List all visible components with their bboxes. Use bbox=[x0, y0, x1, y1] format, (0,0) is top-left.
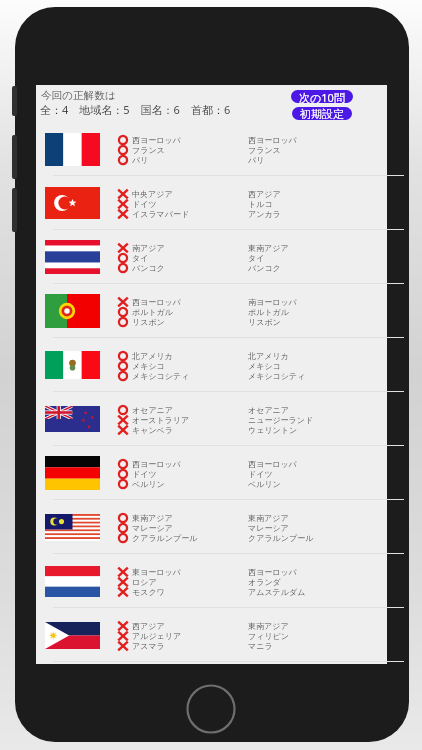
staticText: タイ bbox=[248, 253, 265, 263]
staticText: パリ bbox=[248, 155, 265, 165]
staticText: 東ヨーロッパ bbox=[132, 567, 181, 577]
staticText: ウェリントン bbox=[248, 425, 298, 435]
button[interactable]: 西ヨーロッパ bbox=[36, 446, 387, 500]
staticText: ベルリン bbox=[248, 479, 281, 489]
staticText: 北アメリカ bbox=[132, 351, 173, 361]
staticText: キャンベラ bbox=[132, 425, 173, 435]
button[interactable]: 北アメリカ bbox=[36, 338, 387, 392]
staticText: 西ヨーロッパ bbox=[248, 135, 297, 145]
staticText: フランス bbox=[132, 145, 165, 155]
button[interactable]: 東南アジア bbox=[36, 500, 387, 554]
staticText: 次の10問 bbox=[299, 90, 345, 103]
staticText: 西アジア bbox=[132, 621, 165, 631]
staticText: フランス bbox=[248, 145, 281, 155]
button[interactable]: 次の10問 bbox=[291, 90, 353, 103]
staticText: バンコク bbox=[132, 263, 165, 273]
staticText: オセアニア bbox=[132, 405, 173, 415]
staticText: イスラマバード bbox=[132, 209, 190, 219]
staticText: オセアニア bbox=[248, 405, 289, 415]
staticText: ロシア bbox=[132, 577, 157, 587]
staticText: 西アジア bbox=[248, 189, 281, 199]
staticText: 西ヨーロッパ bbox=[132, 135, 181, 145]
button[interactable]: 南アジア bbox=[36, 230, 387, 284]
staticText: 今回の正解数は bbox=[41, 89, 116, 102]
staticText: オランダ bbox=[248, 577, 281, 587]
staticText: 北アメリカ bbox=[248, 351, 289, 361]
staticText: ベルリン bbox=[132, 479, 165, 489]
staticText: メキシコシティ bbox=[248, 371, 306, 381]
button[interactable]: 初期設定 bbox=[292, 107, 352, 120]
staticText: バンコク bbox=[248, 263, 281, 273]
button[interactable]: 西アジア bbox=[36, 608, 387, 662]
staticText: タイ bbox=[132, 253, 149, 263]
staticText: パリ bbox=[132, 155, 149, 165]
staticText: 東南アジア bbox=[248, 621, 289, 631]
staticText: トルコ bbox=[248, 199, 273, 209]
staticText: 東南アジア bbox=[248, 243, 289, 253]
staticText: ドイツ bbox=[132, 199, 157, 209]
staticText: ポルトガル bbox=[248, 307, 289, 317]
staticText: マニラ bbox=[248, 641, 273, 651]
staticText: 南アジア bbox=[132, 243, 165, 253]
staticText: フィリピン bbox=[248, 631, 289, 641]
staticText: 西ヨーロッパ bbox=[132, 297, 181, 307]
staticText: クアラルンプール bbox=[132, 533, 198, 543]
staticText: アムステルダム bbox=[248, 587, 306, 597]
staticText: マレーシア bbox=[132, 523, 173, 533]
staticText: 東南アジア bbox=[248, 513, 289, 523]
staticText: 西ヨーロッパ bbox=[248, 567, 297, 577]
button[interactable]: 中央アジア bbox=[36, 176, 387, 230]
staticText: メキシコ bbox=[248, 361, 281, 371]
button[interactable]: オセアニア bbox=[36, 392, 387, 446]
staticText: リスボン bbox=[248, 317, 281, 327]
staticText: メキシコ bbox=[132, 361, 165, 371]
staticText: 西ヨーロッパ bbox=[248, 459, 297, 469]
staticText: クアラルンプール bbox=[248, 533, 314, 543]
button[interactable]: 西ヨーロッパ bbox=[36, 122, 387, 176]
staticText: 初期設定 bbox=[300, 107, 344, 120]
staticText: ニュージーランド bbox=[248, 415, 314, 425]
staticText: アスマラ bbox=[132, 641, 165, 651]
button[interactable]: 西ヨーロッパ bbox=[36, 284, 387, 338]
staticText: 東南アジア bbox=[132, 513, 173, 523]
staticText: アンカラ bbox=[248, 209, 281, 219]
staticText: マレーシア bbox=[248, 523, 289, 533]
button[interactable]: 東ヨーロッパ bbox=[36, 554, 387, 608]
staticText: オーストラリア bbox=[132, 415, 190, 425]
staticText: モスクワ bbox=[132, 587, 165, 597]
staticText: メキシコシティ bbox=[132, 371, 190, 381]
staticText: 中央アジア bbox=[132, 189, 173, 199]
staticText: 全：4 地域名：5 国名：6 首都：6 bbox=[40, 102, 231, 117]
staticText: ドイツ bbox=[132, 469, 157, 479]
staticText: アルジェリア bbox=[132, 631, 182, 641]
staticText: 西ヨーロッパ bbox=[132, 459, 181, 469]
staticText: ポルトガル bbox=[132, 307, 173, 317]
staticText: リスボン bbox=[132, 317, 165, 327]
staticText: 南ヨーロッパ bbox=[248, 297, 297, 307]
staticText: ドイツ bbox=[248, 469, 273, 479]
